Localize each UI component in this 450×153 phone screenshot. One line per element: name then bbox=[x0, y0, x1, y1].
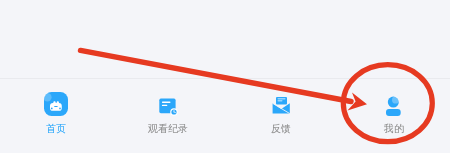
staticText: 反馈 bbox=[271, 122, 291, 135]
button[interactable]: 观看纪录 bbox=[112, 79, 224, 135]
button[interactable]: 首页 bbox=[0, 79, 112, 135]
staticText: 我的 bbox=[384, 122, 404, 135]
button[interactable]: 我的 bbox=[337, 79, 450, 135]
button[interactable]: 反馈 bbox=[224, 79, 337, 135]
staticText: 观看纪录 bbox=[148, 122, 188, 135]
staticText: 首页 bbox=[46, 122, 66, 135]
